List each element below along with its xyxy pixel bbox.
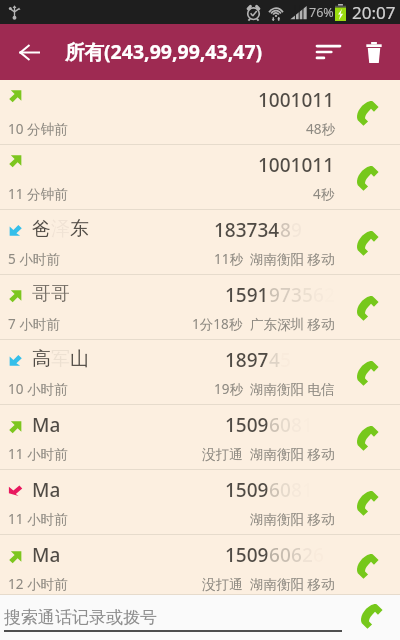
- staticText: 没打通: [202, 446, 243, 463]
- button[interactable]: 哥哥: [0, 275, 400, 340]
- staticText: Ma: [32, 412, 61, 438]
- staticText: 湖南衡阳 移动: [250, 510, 335, 528]
- staticText: 6: [291, 542, 302, 568]
- button[interactable]: Call: [335, 535, 400, 595]
- staticText: 7: [280, 282, 291, 308]
- staticText: 19秒: [214, 380, 243, 398]
- staticText: 高: [32, 347, 51, 371]
- staticText: 2: [302, 542, 313, 568]
- staticText: 1509: [225, 477, 269, 503]
- button[interactable]: Call: [335, 80, 400, 145]
- staticText: 山: [70, 347, 89, 371]
- button[interactable]: Sort: [302, 24, 354, 80]
- button[interactable]: 高: [0, 340, 400, 405]
- staticText: 没打通: [202, 576, 243, 593]
- staticText: 4: [269, 347, 280, 373]
- staticText: 9: [291, 217, 302, 243]
- staticText: 湖南衡阳 电信: [250, 380, 335, 398]
- staticText: 1509: [225, 412, 269, 438]
- button[interactable]: 搜索通话记录或拨号: [4, 595, 342, 640]
- staticText: 湖南衡阳 移动: [250, 575, 335, 593]
- button[interactable]: 1001011: [0, 145, 400, 210]
- staticText: 湖南衡阳 移动: [250, 445, 335, 463]
- staticText: 哥哥: [32, 282, 70, 306]
- staticText: 1001011: [258, 152, 335, 178]
- staticText: 5 小时前: [8, 250, 60, 268]
- staticText: 军: [51, 347, 70, 371]
- staticText: 1509: [225, 542, 269, 568]
- staticText: 1897: [225, 347, 269, 373]
- staticText: 9: [269, 282, 280, 308]
- staticText: 48秒: [306, 120, 335, 138]
- staticText: 爸: [32, 217, 51, 241]
- button[interactable]: 1001011: [0, 80, 400, 145]
- staticText: 5: [302, 282, 313, 308]
- staticText: 10 分钟前: [8, 120, 68, 138]
- button[interactable]: Ma: [0, 535, 400, 595]
- staticText: 6: [269, 477, 280, 503]
- button[interactable]: Call: [335, 210, 400, 275]
- button[interactable]: Dial: [342, 595, 400, 640]
- button[interactable]: 爸: [0, 210, 400, 275]
- staticText: 6: [269, 412, 280, 438]
- staticText: 广东深圳 移动: [250, 315, 335, 333]
- staticText: 0: [280, 542, 291, 568]
- staticText: 183734: [214, 217, 280, 243]
- staticText: Ma: [32, 542, 61, 568]
- staticText: 11 小时前: [8, 510, 68, 528]
- staticText: 11 分钟前: [8, 185, 68, 203]
- staticText: 泽: [51, 217, 70, 241]
- staticText: 6: [269, 542, 280, 568]
- button[interactable]: Call: [335, 145, 400, 210]
- staticText: 1591: [225, 282, 269, 308]
- staticText: 所有(243,99,99,43,47): [65, 38, 263, 65]
- staticText: 4秒: [313, 185, 335, 203]
- button[interactable]: Delete: [354, 24, 394, 80]
- button[interactable]: Ma: [0, 405, 400, 470]
- staticText: 3: [291, 282, 302, 308]
- staticText: 8: [280, 217, 291, 243]
- staticText: 20:07: [352, 1, 396, 24]
- staticText: 12 小时前: [8, 575, 68, 593]
- staticText: 东: [70, 217, 89, 241]
- staticText: 11 小时前: [8, 445, 68, 463]
- button[interactable]: Ma: [0, 470, 400, 535]
- staticText: 11秒: [214, 250, 243, 268]
- staticText: Ma: [32, 477, 61, 503]
- staticText: 0: [280, 412, 291, 438]
- button[interactable]: Call: [335, 340, 400, 405]
- staticText: 1001011: [258, 87, 335, 113]
- staticText: 搜索通话记录或拨号: [4, 607, 157, 628]
- staticText: 湖南衡阳 移动: [250, 250, 335, 268]
- button[interactable]: Call: [335, 470, 400, 535]
- staticText: 0: [280, 477, 291, 503]
- button[interactable]: Call: [335, 405, 400, 470]
- staticText: 10 小时前: [8, 380, 68, 398]
- button[interactable]: Back: [0, 24, 58, 80]
- staticText: 7 小时前: [8, 315, 60, 333]
- staticText: 76%: [309, 4, 334, 21]
- button[interactable]: Call: [335, 275, 400, 340]
- staticText: 1分18秒: [192, 315, 243, 333]
